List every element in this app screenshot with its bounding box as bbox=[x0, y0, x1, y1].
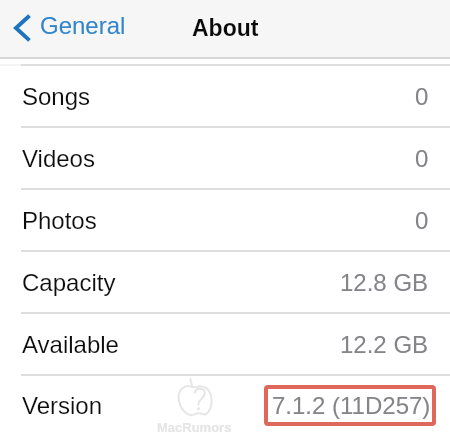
button[interactable]: Capacity bbox=[0, 252, 450, 314]
staticText: About bbox=[192, 15, 259, 41]
other: Back bbox=[14, 15, 30, 41]
button[interactable]: Songs bbox=[0, 66, 450, 128]
staticText: 0 bbox=[415, 83, 429, 110]
staticText: 0 bbox=[415, 207, 429, 234]
button[interactable]: Back bbox=[0, 1, 138, 58]
staticText: 12.8 GB bbox=[340, 269, 429, 296]
staticText: Available bbox=[22, 331, 119, 358]
staticText: Version bbox=[22, 392, 103, 419]
staticText: 0 bbox=[415, 145, 429, 172]
staticText: Capacity bbox=[22, 269, 116, 296]
button[interactable]: Available bbox=[0, 314, 450, 376]
button[interactable]: MacRumors bbox=[0, 376, 450, 434]
staticText: Photos bbox=[22, 207, 97, 234]
staticText: Songs bbox=[22, 83, 91, 110]
staticText: General bbox=[40, 12, 126, 39]
staticText: Videos bbox=[22, 145, 95, 172]
staticText: 12.2 GB bbox=[340, 331, 429, 358]
staticText: 7.1.2 (11D257) bbox=[272, 392, 431, 419]
staticText: MacRumors bbox=[157, 420, 232, 434]
button[interactable]: Photos bbox=[0, 190, 450, 252]
button[interactable]: Videos bbox=[0, 128, 450, 190]
